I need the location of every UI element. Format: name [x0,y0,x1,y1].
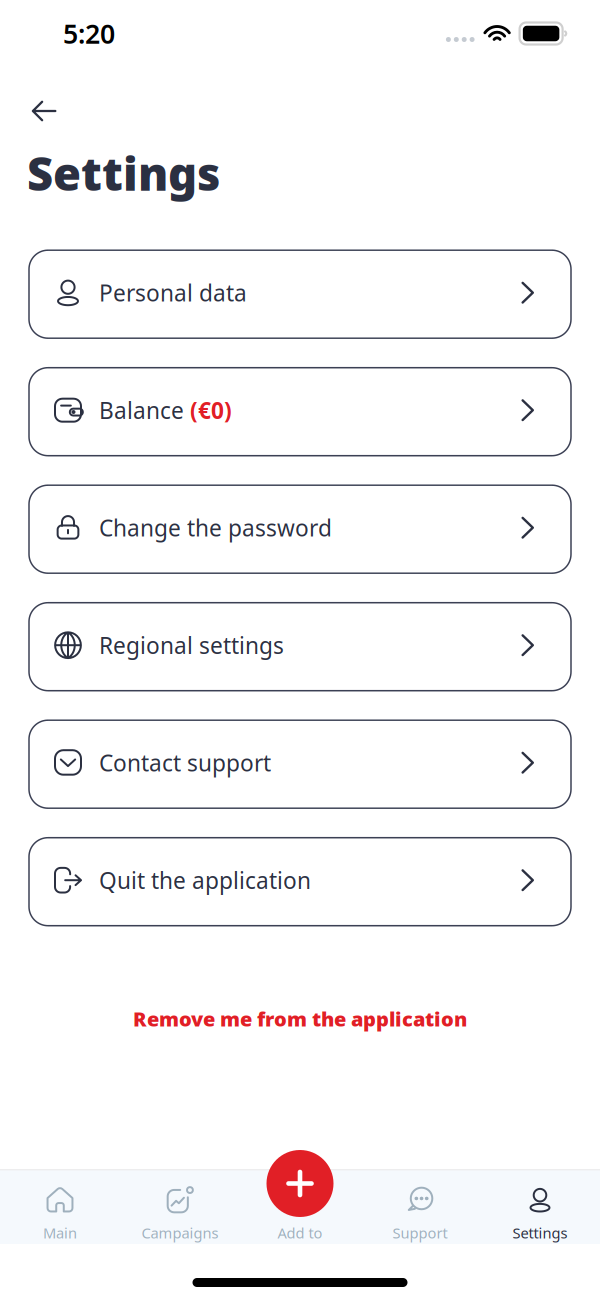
staticText: Contact support [99,748,271,778]
staticText: Support [392,1223,447,1242]
staticText: Personal data [99,278,247,308]
staticText: Settings [512,1223,567,1242]
staticText: Settings [27,143,220,203]
button[interactable]: Contact support [29,720,571,808]
staticText: Add to [277,1223,322,1242]
button[interactable]: Add to [240,1169,360,1244]
staticText: (€0) [190,395,232,425]
button[interactable]: Add to [266,1150,333,1217]
staticText: Remove me from the application [133,1005,467,1032]
staticText: Campaigns [141,1223,218,1242]
button[interactable]: Balance [29,368,571,456]
button[interactable]: Change the password [29,485,571,573]
button[interactable]: Main [0,1169,120,1244]
staticText: Regional settings [99,630,284,660]
staticText: Main [43,1223,77,1242]
staticText: Change the password [99,513,332,543]
button[interactable]: Personal data [29,250,571,338]
button[interactable]: Support [360,1169,480,1244]
button[interactable]: Remove me from the application [0,992,600,1046]
staticText: Balance [99,395,190,425]
button[interactable]: Quit the application [29,838,571,926]
button[interactable]: Back [22,89,66,133]
button[interactable]: Settings [480,1169,600,1244]
button[interactable]: Regional settings [29,603,571,691]
staticText: 5:20 [63,16,115,51]
button[interactable]: Campaigns [120,1169,240,1244]
staticText: Quit the application [99,865,311,895]
